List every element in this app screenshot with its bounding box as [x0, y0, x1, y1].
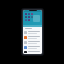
button[interactable]: App tile [28, 19, 30, 21]
button[interactable]: App tile [25, 13, 27, 15]
button[interactable] [33, 15, 40, 22]
button[interactable]: App tile [25, 16, 27, 18]
button[interactable] [23, 40, 42, 45]
button[interactable]: App tile [28, 13, 30, 15]
button[interactable] [23, 50, 42, 54]
button[interactable]: App tile [31, 13, 33, 15]
button[interactable] [23, 45, 42, 50]
button[interactable] [23, 30, 42, 35]
button[interactable]: App tile [23, 10, 42, 27]
button[interactable]: App tile [28, 16, 30, 18]
button[interactable] [23, 35, 42, 40]
button[interactable]: App tile [25, 19, 27, 21]
